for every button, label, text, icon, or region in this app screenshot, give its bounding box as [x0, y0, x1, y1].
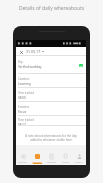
button[interactable]: Reports	[44, 145, 58, 165]
button[interactable]: Safety	[58, 145, 72, 165]
staticText: 08:17	[18, 123, 26, 125]
button[interactable]: Time tracked	[16, 116, 86, 125]
button[interactable]: Close	[18, 49, 24, 55]
staticText: A note about whereabouts for the day add…	[21, 134, 81, 142]
staticText: Time tracked	[18, 118, 34, 122]
button[interactable]: Day	[16, 56, 86, 73]
staticText: Learning	[18, 82, 31, 86]
staticText: 08:00	[18, 96, 26, 100]
staticText: Day	[18, 60, 23, 64]
staticText: Details of daily whereabouts	[19, 5, 85, 12]
staticText: Time tracked	[18, 91, 34, 95]
staticText: Timeline	[32, 160, 42, 163]
staticText: Reports	[47, 160, 56, 163]
button[interactable]: Counters	[16, 74, 86, 87]
button[interactable]: Profile	[72, 145, 86, 165]
staticText: Safety	[62, 160, 69, 163]
staticText: Counters	[18, 105, 30, 109]
button[interactable]: Timeline	[30, 145, 44, 165]
staticText: 31.05.17	[26, 49, 41, 54]
staticText: Profile	[75, 160, 83, 163]
staticText: Focus	[18, 110, 27, 114]
staticText: Verified workday	[18, 65, 42, 69]
staticText: Counters	[18, 77, 30, 81]
staticText: Settings	[18, 160, 28, 163]
button[interactable]: Counters	[16, 102, 86, 115]
button[interactable]: Time tracked	[16, 88, 86, 101]
button[interactable]: 31.05.17	[26, 49, 44, 54]
button[interactable]: Settings	[16, 145, 30, 165]
